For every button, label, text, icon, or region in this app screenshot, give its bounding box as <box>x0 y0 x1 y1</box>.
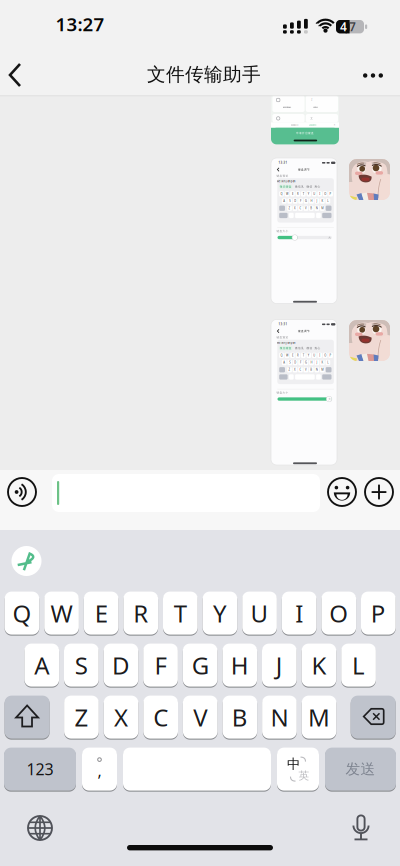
button[interactable]: H <box>222 643 257 687</box>
button[interactable]: I <box>282 591 316 635</box>
staticText: weixinjianpan <box>277 341 296 344</box>
button[interactable]: B <box>222 695 257 739</box>
staticText: V <box>305 206 307 210</box>
button[interactable]: Hold to talk <box>7 477 37 507</box>
button[interactable]: N <box>262 695 297 739</box>
staticText: 微信键盘 <box>280 185 292 188</box>
staticText: G <box>192 649 209 681</box>
staticText: M <box>321 368 323 371</box>
button[interactable]: W <box>44 591 79 635</box>
staticText: T <box>303 192 304 196</box>
staticText: Z <box>289 206 291 210</box>
staticText: B <box>310 206 312 210</box>
staticText: A <box>283 199 285 203</box>
staticText: 大 <box>328 236 331 239</box>
button[interactable]: Screenshot message <box>271 93 339 144</box>
staticText: Z <box>289 368 291 371</box>
button[interactable]: Next keyboard <box>26 814 54 842</box>
staticText: A <box>34 649 49 681</box>
staticText: 4 <box>340 19 347 34</box>
staticText: 申请开启键盘 <box>296 131 314 135</box>
button[interactable]: F <box>143 643 178 687</box>
button[interactable]: Screenshot message <box>271 158 337 304</box>
button[interactable]: More functions <box>364 477 394 507</box>
button[interactable]: Comma <box>82 747 117 791</box>
staticText: J <box>276 649 283 681</box>
staticText: 中 <box>287 756 300 772</box>
staticText: 微信见 <box>295 347 304 350</box>
button[interactable]: E <box>84 591 118 635</box>
button[interactable]: My avatar <box>349 320 390 361</box>
staticText: ⽂ <box>310 117 313 120</box>
staticText: R <box>297 354 299 357</box>
staticText: E <box>292 192 293 196</box>
staticText: T <box>303 354 304 357</box>
staticText: 热心 <box>315 185 321 188</box>
button[interactable]: M <box>302 695 336 739</box>
staticText: 微信键盘 <box>280 347 292 350</box>
staticText: U <box>313 354 315 357</box>
button[interactable]: My avatar <box>349 159 390 200</box>
staticText: K <box>321 361 323 364</box>
staticText: C <box>299 368 301 371</box>
button[interactable]: J <box>262 643 297 687</box>
staticText: Q <box>12 597 31 629</box>
staticText: O <box>324 354 326 357</box>
button[interactable]: Message <box>52 474 320 512</box>
staticText: C <box>299 206 301 210</box>
button[interactable]: Keyboard plugin <box>11 546 41 576</box>
staticText: W <box>286 354 288 357</box>
staticText: L <box>327 361 328 364</box>
button[interactable]: G <box>183 643 217 687</box>
button[interactable]: More <box>356 60 390 90</box>
button[interactable]: Send <box>325 747 396 791</box>
staticText: 键盘预览 <box>277 336 289 339</box>
staticText: H <box>310 199 312 203</box>
button[interactable]: Y <box>203 591 237 635</box>
staticText: Y <box>308 192 310 196</box>
staticText: L <box>352 649 365 681</box>
button[interactable]: T <box>163 591 198 635</box>
button[interactable]: U <box>242 591 277 635</box>
staticText: V <box>193 701 207 733</box>
button[interactable]: C <box>143 695 178 739</box>
staticText: V <box>305 368 307 371</box>
staticText: E <box>95 597 108 629</box>
button[interactable]: K <box>302 643 336 687</box>
staticText: J <box>316 361 317 364</box>
staticText: 微信 <box>307 347 313 350</box>
button[interactable]: S <box>64 643 99 687</box>
staticText: N <box>316 206 318 210</box>
button[interactable]: Q <box>5 591 39 635</box>
button[interactable]: Numbers <box>4 747 76 791</box>
staticText: X <box>114 701 128 733</box>
staticText: 像是用不惯新键盘 › <box>283 106 291 108</box>
staticText: D <box>112 649 130 681</box>
staticText: P <box>330 354 332 357</box>
staticText: 13:31 <box>278 161 287 164</box>
button[interactable]: Z <box>64 695 99 739</box>
button[interactable]: R <box>123 591 158 635</box>
button[interactable]: Shift <box>5 695 50 739</box>
button[interactable]: Stickers <box>327 477 357 507</box>
staticText: 7 <box>349 19 356 34</box>
button[interactable]: X <box>104 695 138 739</box>
button[interactable]: Back <box>8 62 34 88</box>
button[interactable]: Space <box>123 747 271 791</box>
staticText: 去系统设置开启 <box>309 124 316 126</box>
staticText: O <box>324 192 326 196</box>
button[interactable]: Delete <box>351 695 396 739</box>
button[interactable]: Screenshot message <box>271 319 337 465</box>
staticText: G <box>305 361 307 364</box>
button[interactable]: A <box>24 643 59 687</box>
button[interactable]: L <box>341 643 376 687</box>
button[interactable]: V <box>183 695 218 739</box>
staticText: 发送 <box>345 760 375 778</box>
staticText: M <box>308 701 330 733</box>
button[interactable]: O <box>321 591 356 635</box>
button[interactable]: D <box>104 643 138 687</box>
button[interactable]: Dictate <box>349 811 373 845</box>
button[interactable]: P <box>361 591 396 635</box>
button[interactable]: Switch language <box>277 747 319 791</box>
